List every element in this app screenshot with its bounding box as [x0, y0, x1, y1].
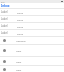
staticText: value: [17, 18, 23, 21]
staticText: Label: [1, 31, 8, 35]
button[interactable]: Item: [0, 66, 64, 72]
staticText: Item: [16, 49, 22, 52]
staticText: Item: [16, 60, 22, 63]
button[interactable]: Label: [0, 9, 64, 15]
button[interactable]: Label: [0, 30, 64, 36]
staticText: Label: [1, 10, 8, 14]
staticText: Label: [1, 17, 8, 21]
staticText: 9:41: [1, 1, 5, 3]
staticText: value: [17, 32, 23, 35]
button[interactable]: Heading: [0, 37, 64, 44]
button[interactable]: Item: [0, 45, 64, 56]
staticText: value: [17, 25, 23, 28]
button[interactable]: Label: [0, 16, 64, 22]
staticText: Item: [16, 68, 22, 71]
staticText: Heading: [16, 39, 26, 42]
staticText: Inbox: [1, 4, 10, 8]
button[interactable]: Label: [0, 23, 64, 29]
staticText: value: [17, 11, 23, 14]
staticText: Label: [1, 24, 8, 28]
button[interactable]: Item: [0, 57, 64, 65]
